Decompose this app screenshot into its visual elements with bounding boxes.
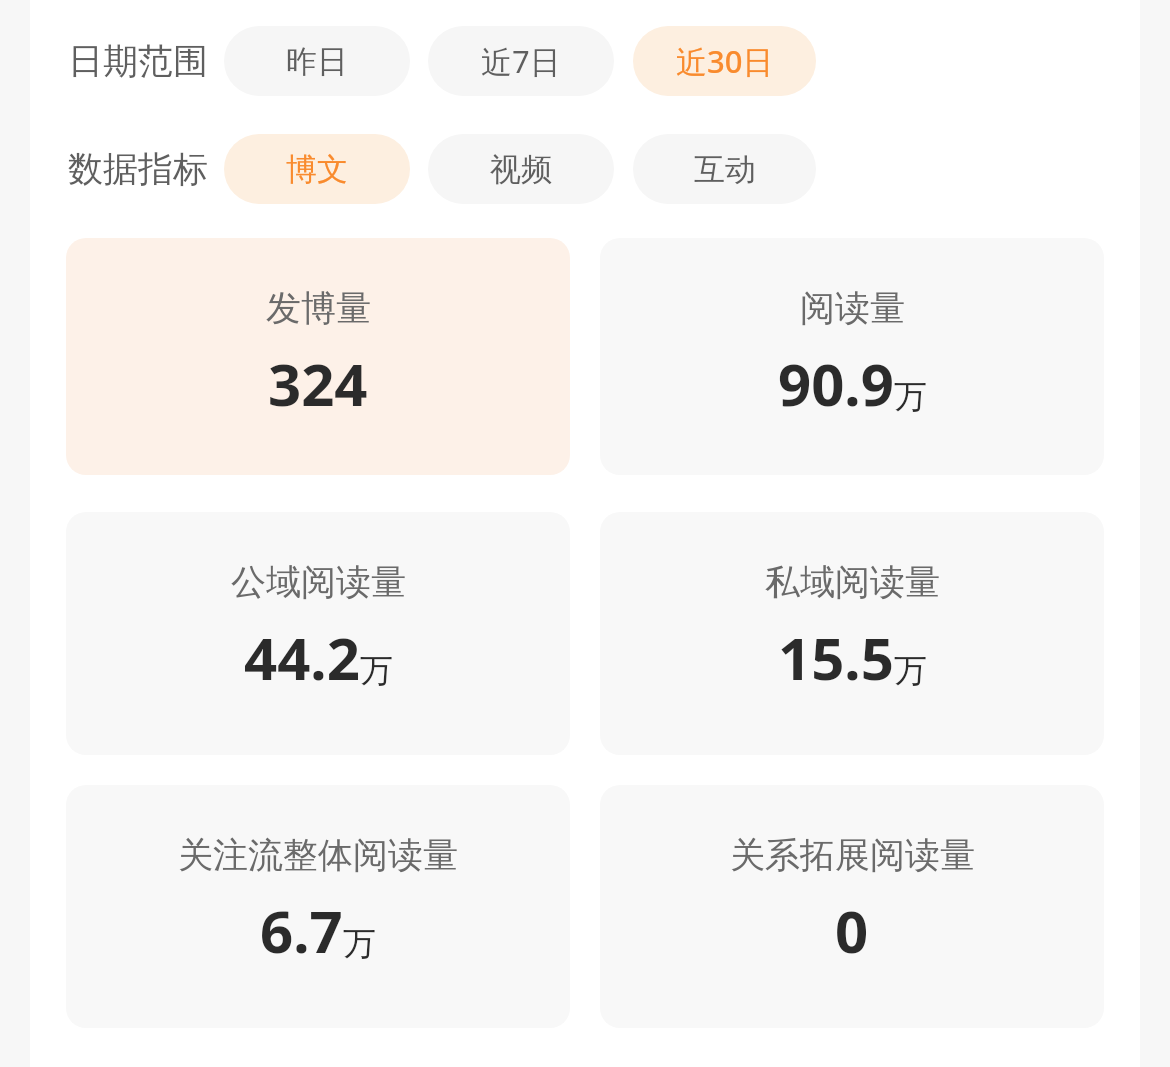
- staticText: 博文: [286, 150, 348, 189]
- button[interactable]: 互动: [633, 134, 816, 204]
- staticText: 6.7: [260, 891, 343, 970]
- staticText: 万: [894, 650, 927, 692]
- staticText: 万: [894, 376, 927, 418]
- staticText: 关系拓展阅读量: [730, 833, 975, 877]
- staticText: 近30日: [676, 40, 774, 82]
- button[interactable]: 视频: [428, 134, 614, 204]
- staticText: 324: [268, 344, 368, 423]
- staticText: 发博量: [266, 286, 371, 330]
- staticText: 近7日: [481, 40, 561, 82]
- button[interactable]: 近7日: [428, 26, 614, 96]
- staticText: 44.2: [244, 618, 360, 697]
- staticText: 昨日: [286, 42, 348, 81]
- button[interactable]: 发博量: [66, 238, 570, 475]
- staticText: 互动: [694, 150, 756, 189]
- staticText: 0: [835, 891, 869, 970]
- staticText: 15.5: [778, 618, 894, 697]
- button[interactable]: 近30日: [633, 26, 816, 96]
- staticText: 万: [360, 650, 393, 692]
- button[interactable]: 公域阅读量: [66, 512, 570, 755]
- button[interactable]: 阅读量: [600, 238, 1104, 475]
- staticText: 90.9: [778, 344, 894, 423]
- button[interactable]: 关注流整体阅读量: [66, 785, 570, 1028]
- staticText: 关注流整体阅读量: [178, 833, 458, 877]
- staticText: 私域阅读量: [765, 560, 940, 604]
- staticText: 视频: [490, 150, 552, 189]
- staticText: 万: [343, 923, 376, 965]
- staticText: 数据指标: [68, 147, 208, 191]
- button[interactable]: 关系拓展阅读量: [600, 785, 1104, 1028]
- button[interactable]: 博文: [224, 134, 410, 204]
- staticText: 日期范围: [68, 39, 208, 83]
- button[interactable]: 昨日: [224, 26, 410, 96]
- staticText: 阅读量: [800, 286, 905, 330]
- staticText: 公域阅读量: [231, 560, 406, 604]
- button[interactable]: 私域阅读量: [600, 512, 1104, 755]
